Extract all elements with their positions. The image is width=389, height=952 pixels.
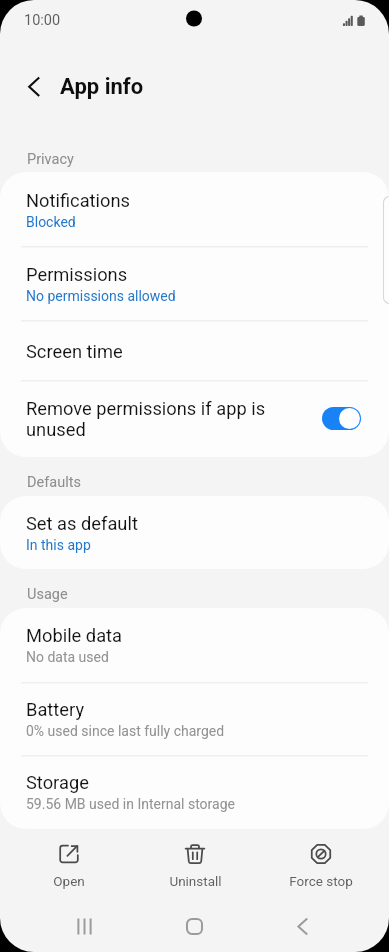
button[interactable]: Set as default [0, 496, 389, 569]
staticText: unused [26, 419, 86, 440]
staticText: Open [53, 873, 85, 889]
staticText: Set as default [26, 513, 138, 534]
staticText: No permissions allowed [26, 288, 176, 304]
staticText: Notifications [26, 190, 131, 211]
button[interactable]: Force stop [265, 838, 377, 894]
staticText: No data used [26, 649, 109, 665]
staticText: Screen time [26, 341, 123, 362]
staticText: App info [60, 74, 144, 100]
button[interactable]: Screen time [0, 321, 389, 381]
button[interactable]: Remove permissions toggle [322, 407, 361, 430]
staticText: Blocked [26, 214, 76, 230]
staticText: Usage [27, 586, 68, 603]
staticText: Uninstall [169, 873, 222, 889]
button[interactable]: Permissions [0, 247, 389, 321]
staticText: Permissions [26, 264, 128, 285]
button[interactable]: Navigate up [12, 64, 56, 108]
staticText: Defaults [27, 474, 81, 491]
button[interactable]: Uninstall [139, 838, 251, 894]
button[interactable]: Recent apps [44, 900, 124, 952]
staticText: 0% used since last fully charged [26, 723, 225, 739]
staticText: Mobile data [26, 625, 123, 646]
staticText: 10:00 [24, 12, 61, 29]
staticText: Force stop [289, 873, 353, 889]
staticText: Battery [26, 699, 85, 720]
staticText: In this app [26, 537, 91, 553]
button[interactable]: Battery [0, 682, 389, 755]
button[interactable]: Storage [0, 755, 389, 829]
button[interactable]: Notifications [0, 172, 389, 247]
button[interactable]: Mobile data [0, 608, 389, 682]
button[interactable]: Back [263, 900, 343, 952]
staticText: Remove permissions if app is [26, 398, 266, 419]
staticText: Privacy [27, 151, 74, 168]
button[interactable]: Open [13, 838, 125, 894]
button[interactable]: Remove permissions if app is [0, 381, 389, 457]
button[interactable]: Home [154, 900, 234, 952]
staticText: 59.56 MB used in Internal storage [26, 796, 235, 812]
staticText: Storage [26, 772, 89, 793]
